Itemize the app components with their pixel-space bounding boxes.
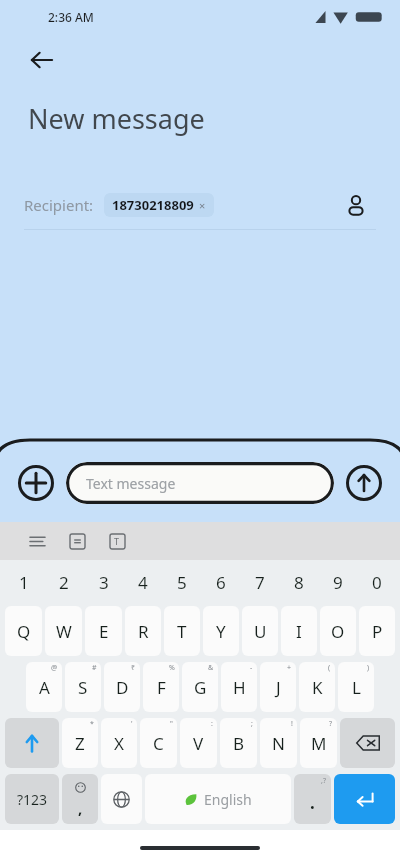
staticText: C: [153, 732, 164, 755]
staticText: V: [193, 732, 204, 755]
button[interactable]: B: [220, 718, 257, 768]
button[interactable]: Menu: [22, 526, 52, 556]
button[interactable]: Shift: [5, 718, 59, 768]
button[interactable]: L: [338, 662, 374, 712]
staticText: Q: [17, 620, 31, 643]
button[interactable]: .: [294, 774, 331, 824]
staticText: #: [92, 663, 97, 673]
staticText: *: [90, 719, 94, 729]
staticText: W: [56, 620, 72, 643]
staticText: A: [39, 676, 50, 699]
staticText: &: [208, 663, 214, 673]
staticText: .: [310, 791, 315, 814]
button[interactable]: G: [182, 662, 218, 712]
button[interactable]: C: [140, 718, 177, 768]
button[interactable]: Text editing: [102, 526, 132, 556]
button[interactable]: Text message: [66, 462, 334, 504]
staticText: -: [250, 663, 253, 673]
staticText: F: [157, 676, 166, 699]
button[interactable]: 3: [84, 560, 123, 604]
button[interactable]: W: [45, 606, 82, 656]
staticText: R: [138, 620, 149, 643]
button[interactable]: Backspace: [340, 718, 395, 768]
staticText: G: [194, 676, 207, 699]
button[interactable]: 1: [4, 560, 44, 604]
staticText: New message: [28, 100, 205, 137]
button[interactable]: ?123: [5, 774, 59, 824]
staticText: 1: [19, 571, 29, 594]
button[interactable]: D: [104, 662, 140, 712]
button[interactable]: A: [26, 662, 62, 712]
button[interactable]: Back: [16, 34, 68, 86]
button[interactable]: X: [101, 718, 137, 768]
staticText: K: [312, 676, 323, 699]
button[interactable]: 6: [201, 560, 240, 604]
staticText: ×: [199, 198, 206, 213]
button[interactable]: Q: [5, 606, 42, 656]
staticText: S: [78, 676, 88, 699]
button[interactable]: S: [65, 662, 101, 712]
button[interactable]: Clipboard: [62, 526, 92, 556]
staticText: +: [287, 663, 292, 673]
staticText: 2: [59, 571, 69, 594]
staticText: Text message: [86, 474, 176, 493]
staticText: ;: [251, 719, 253, 729]
button[interactable]: 9: [318, 560, 357, 604]
staticText: 9: [333, 571, 343, 594]
button[interactable]: Send: [346, 465, 382, 501]
staticText: 3: [99, 571, 109, 594]
button[interactable]: R: [125, 606, 161, 656]
staticText: U: [254, 620, 267, 643]
staticText: N: [272, 732, 285, 755]
button[interactable]: 8: [279, 560, 318, 604]
button[interactable]: English: [145, 774, 291, 824]
button[interactable]: P: [359, 606, 395, 656]
button[interactable]: Y: [203, 606, 239, 656]
staticText: ": [170, 719, 173, 729]
button[interactable]: Change language: [101, 774, 142, 824]
button[interactable]: Enter: [334, 774, 395, 824]
staticText: Z: [75, 732, 85, 755]
button[interactable]: M: [300, 718, 337, 768]
staticText: @: [51, 663, 58, 673]
button[interactable]: Add attachment: [18, 465, 54, 501]
staticText: T: [114, 535, 120, 547]
button[interactable]: O: [320, 606, 356, 656]
button[interactable]: E: [85, 606, 122, 656]
button[interactable]: 0: [357, 560, 396, 604]
button[interactable]: 2: [44, 560, 84, 604]
button[interactable]: Emoji and comma: [62, 774, 98, 824]
button[interactable]: Z: [62, 718, 98, 768]
staticText: ,?: [321, 776, 326, 786]
button[interactable]: K: [299, 662, 335, 712]
button[interactable]: F: [143, 662, 179, 712]
button[interactable]: 5: [162, 560, 201, 604]
button[interactable]: N: [260, 718, 297, 768]
staticText: I: [296, 620, 302, 643]
staticText: 8: [294, 571, 304, 594]
button[interactable]: I: [281, 606, 317, 656]
staticText: ): [367, 663, 370, 673]
button[interactable]: H: [221, 662, 257, 712]
staticText: 6: [216, 571, 226, 594]
button[interactable]: 4: [123, 560, 162, 604]
button[interactable]: 7: [240, 560, 279, 604]
button[interactable]: J: [260, 662, 296, 712]
staticText: ?: [329, 719, 333, 729]
button[interactable]: 18730218809: [104, 193, 214, 217]
staticText: O: [331, 620, 345, 643]
staticText: E: [99, 620, 109, 643]
staticText: ₹: [131, 663, 136, 673]
staticText: 5: [177, 571, 187, 594]
button[interactable]: T: [164, 606, 200, 656]
button[interactable]: V: [180, 718, 217, 768]
staticText: 0: [372, 571, 382, 594]
staticText: X: [114, 732, 124, 755]
staticText: (: [328, 663, 331, 673]
staticText: 18730218809: [112, 196, 194, 214]
staticText: English: [204, 790, 252, 809]
staticText: 2:36 AM: [48, 9, 94, 25]
button[interactable]: Contacts: [336, 185, 376, 225]
staticText: J: [276, 676, 281, 699]
button[interactable]: U: [242, 606, 278, 656]
